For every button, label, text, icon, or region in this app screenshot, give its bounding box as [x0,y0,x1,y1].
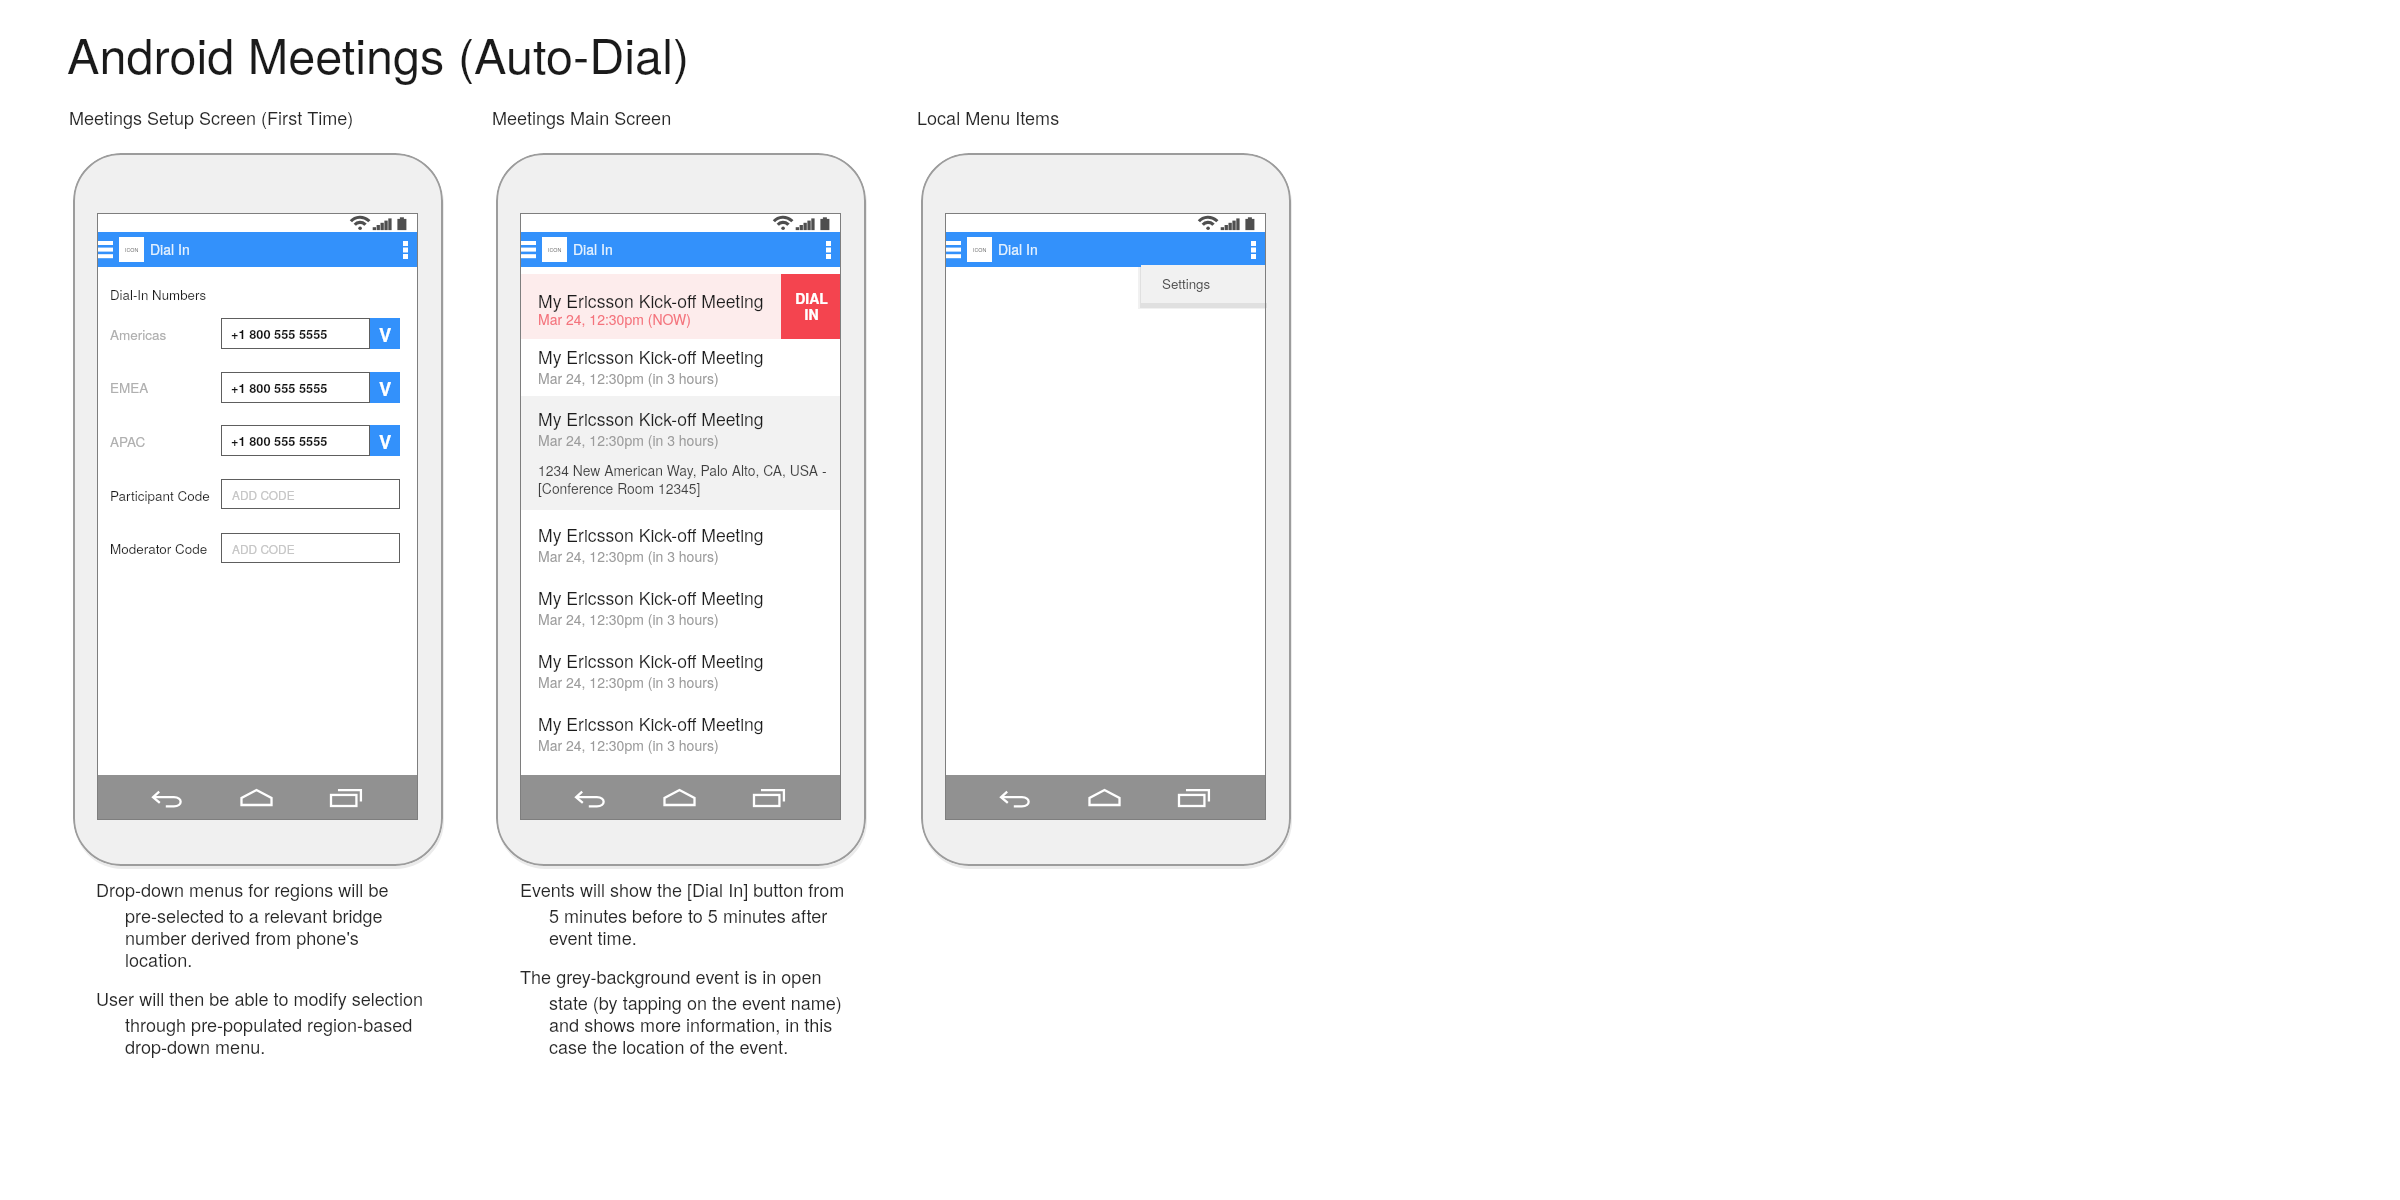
button[interactable]: Settings [1141,265,1267,303]
staticText: My Ericsson Kick-off Meeting [538,288,764,313]
button[interactable]: Home [651,775,707,820]
staticText: Mar 24, 12:30pm (in 3 hours) [538,546,719,566]
button[interactable]: Navigation drawer [945,232,966,267]
button[interactable]: More options [1240,232,1266,267]
staticText: My Ericsson Kick-off Meeting [538,406,764,431]
button[interactable]: Navigation drawer [520,232,541,267]
button[interactable]: ADD CODE [221,479,400,509]
staticText: 5 minutes before to 5 minutes after even… [549,902,828,950]
staticText: Moderator Code [110,539,208,558]
staticText: Dial-In Numbers [110,285,207,304]
button[interactable]: +1 800 555 5555 [221,425,400,456]
staticText: Events will show the [Dial In] button fr… [520,876,845,902]
staticText: V [379,375,392,401]
staticText: Mar 24, 12:30pm (NOW) [538,309,691,329]
button[interactable]: Back [139,775,195,820]
button[interactable]: +1 800 555 5555 [221,372,400,403]
staticText: ADD CODE [232,540,295,557]
staticText: Meetings Main Screen [492,104,672,130]
button[interactable]: +1 800 555 5555 [221,318,400,349]
button[interactable]: Recent apps [318,775,374,820]
button[interactable]: Back [562,775,618,820]
staticText: 1234 New American Way, Palo Alto, CA, US… [538,460,834,498]
staticText: Mar 24, 12:30pm (in 3 hours) [538,368,719,388]
staticText: Americas [110,325,167,344]
staticText: Mar 24, 12:30pm (in 3 hours) [538,672,719,692]
staticText: Mar 24, 12:30pm (in 3 hours) [538,430,719,450]
staticText: V [379,428,392,454]
staticText: state (by tapping on the event name) and… [549,989,842,1059]
staticText: ICON [548,246,562,254]
button[interactable]: Home [228,775,284,820]
button[interactable]: More options [815,232,841,267]
staticText: V [379,321,392,347]
staticText: ICON [973,246,987,254]
button[interactable]: My Ericsson Kick-off Meeting [520,510,841,573]
staticText: Drop-down menus for regions will be [96,876,389,902]
staticText: +1 800 555 5555 [231,379,328,397]
staticText: Dial In [573,239,613,259]
staticText: My Ericsson Kick-off Meeting [538,344,764,369]
button[interactable]: More options [392,232,418,267]
button[interactable]: Back [987,775,1043,820]
button[interactable]: My Ericsson Kick-off Meeting [520,396,841,510]
button[interactable]: My Ericsson Kick-off Meeting [520,699,841,762]
staticText: My Ericsson Kick-off Meeting [538,711,764,736]
staticText: pre-selected to a relevant bridge number… [125,902,383,972]
staticText: My Ericsson Kick-off Meeting [538,585,764,610]
staticText: Local Menu Items [917,104,1060,130]
button[interactable]: Home [1076,775,1132,820]
staticText: EMEA [110,378,149,397]
staticText: Dial In [998,239,1038,259]
staticText: APAC [110,432,146,451]
staticText: My Ericsson Kick-off Meeting [538,648,764,673]
staticText: User will then be able to modify selecti… [96,985,423,1011]
staticText: through pre-populated region-based drop-… [125,1011,413,1059]
button[interactable]: My Ericsson Kick-off Meeting [520,274,841,339]
staticText: Meetings Setup Screen (First Time) [69,104,354,130]
button[interactable]: ADD CODE [221,533,400,563]
button[interactable]: My Ericsson Kick-off Meeting [520,636,841,699]
staticText: Dial In [150,239,190,259]
staticText: Mar 24, 12:30pm (in 3 hours) [538,735,719,755]
button[interactable]: My Ericsson Kick-off Meeting [520,339,841,396]
staticText: Participant Code [110,486,210,505]
staticText: Mar 24, 12:30pm (in 3 hours) [538,609,719,629]
button[interactable]: DIAL IN [781,274,841,339]
staticText: Settings [1162,274,1211,293]
staticText: The grey-background event is in open [520,963,822,989]
staticText: My Ericsson Kick-off Meeting [538,522,764,547]
staticText: ADD CODE [232,486,295,503]
staticText: +1 800 555 5555 [231,432,328,450]
staticText: Android Meetings (Auto-Dial) [67,18,690,88]
button[interactable]: My Ericsson Kick-off Meeting [520,573,841,636]
staticText: ICON [125,246,139,254]
button[interactable]: Navigation drawer [97,232,118,267]
staticText: +1 800 555 5555 [231,325,328,343]
button[interactable]: Recent apps [741,775,797,820]
button[interactable]: Recent apps [1166,775,1222,820]
staticText: DIAL IN [795,288,828,325]
